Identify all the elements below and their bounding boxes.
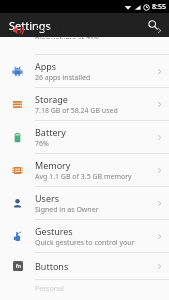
staticText: 7.18 GB of 58.24 GB used — [35, 106, 118, 116]
button[interactable]: Gestures — [0, 220, 169, 252]
staticText: 76% — [35, 139, 49, 149]
staticText: Settings — [9, 18, 51, 33]
staticText: Ring volume at 71% — [35, 35, 100, 39]
staticText: Sound — [35, 22, 63, 34]
staticText: Quick gestures to control your phone — [35, 238, 149, 248]
staticText: Personal — [35, 284, 64, 292]
staticText: Battery — [35, 126, 66, 138]
button[interactable]: Battery — [0, 121, 169, 153]
staticText: Memory — [35, 159, 71, 171]
button[interactable]: Search — [143, 15, 163, 35]
staticText: Storage — [35, 93, 68, 105]
staticText: Apps — [35, 60, 57, 72]
button[interactable]: Storage — [0, 88, 169, 120]
button[interactable]: Users — [0, 187, 169, 219]
button[interactable]: fn — [0, 253, 169, 279]
staticText: Signed in as Owner — [35, 205, 99, 215]
staticText: Gestures — [35, 225, 73, 237]
staticText: Users — [35, 192, 59, 204]
staticText: 26 apps installed — [35, 73, 91, 83]
button[interactable]: Memory — [0, 154, 169, 186]
staticText: Avg 1.1 GB of 3.5 GB memory used — [35, 172, 149, 182]
button[interactable]: Apps — [0, 55, 169, 87]
staticText: 8:55 — [152, 2, 166, 12]
staticText: Buttons — [35, 260, 69, 272]
staticText: fn — [16, 263, 21, 270]
